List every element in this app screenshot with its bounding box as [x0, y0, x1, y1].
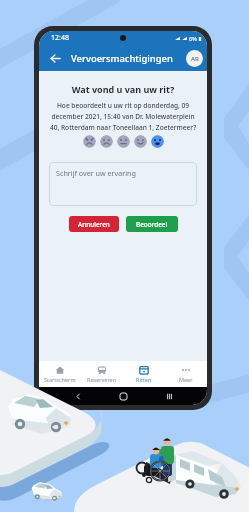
staticText: Startscherm — [44, 376, 76, 383]
staticText: Vervoersmachtigingen — [71, 52, 173, 65]
staticText: AR — [191, 55, 199, 63]
staticText: 6% — [189, 35, 197, 42]
staticText: Hoe beoordeelt u uw rit op donderdag, 09… — [49, 101, 197, 132]
button[interactable]: Rating 3 — [117, 135, 130, 148]
button[interactable]: Schrijf over uw ervaring — [49, 162, 197, 206]
button[interactable]: Home — [116, 389, 130, 403]
button[interactable]: Startscherm — [39, 365, 81, 383]
button[interactable]: Recents — [162, 389, 176, 403]
staticText: 12:48 — [51, 33, 69, 43]
staticText: Annuleren — [78, 220, 110, 229]
button[interactable]: Ritten — [123, 365, 165, 383]
button[interactable]: Rating 1 — [83, 135, 96, 148]
staticText: Wat vond u van uw rit? — [49, 83, 197, 95]
staticText: Reserveren — [87, 376, 117, 383]
button[interactable]: Rating 2 — [100, 135, 113, 148]
button[interactable]: Back — [71, 389, 85, 403]
staticText: Meer — [179, 376, 193, 383]
staticText: Schrijf over uw ervaring — [56, 168, 136, 178]
button[interactable]: Annuleren — [69, 216, 119, 232]
button[interactable]: Rating 5 — [151, 135, 164, 148]
button[interactable]: Rating 4 — [134, 135, 147, 148]
staticText: Ritten — [136, 376, 152, 383]
button[interactable]: AR — [186, 50, 203, 67]
button[interactable]: Reserveren — [81, 365, 123, 383]
button[interactable]: Beoordeel — [126, 216, 178, 232]
button[interactable]: Back — [45, 48, 65, 68]
button[interactable]: Meer — [165, 365, 207, 383]
staticText: Beoordeel — [136, 220, 168, 229]
